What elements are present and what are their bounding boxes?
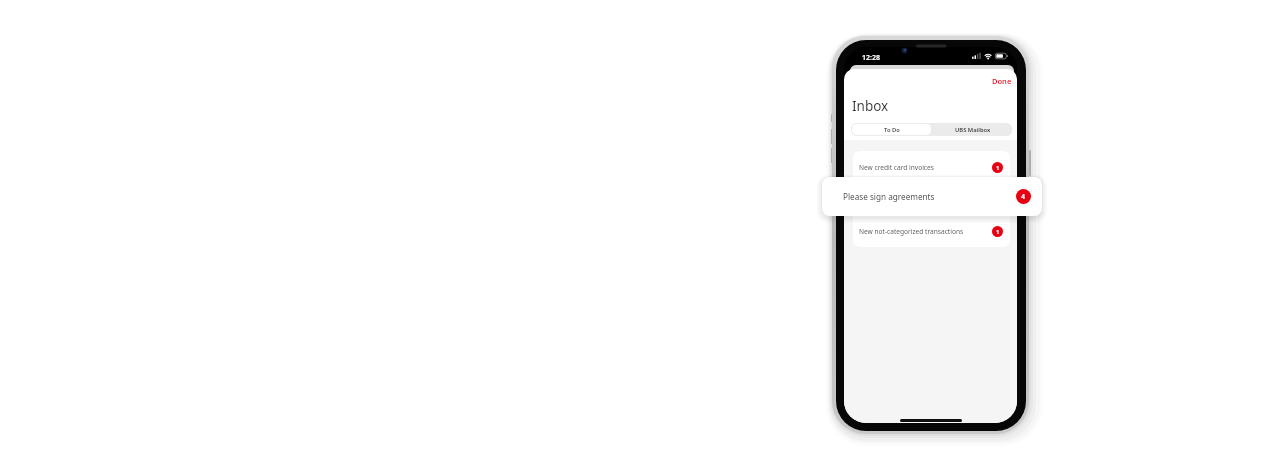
button[interactable]: New not-categorized transactions [853,215,1010,247]
staticText: To Do [884,126,900,134]
button[interactable]: To Do [852,124,931,135]
staticText: 4 [1021,192,1026,202]
button[interactable]: Please sign agreements [822,177,1042,216]
staticText: New credit card invoices [859,163,934,172]
staticText: Inbox [852,97,889,115]
button[interactable]: Done [992,76,1012,86]
staticText: Please sign agreements [843,191,935,202]
staticText: Done [992,76,1012,86]
staticText: 12:28 [862,53,880,63]
button[interactable]: UBS Mailbox [932,123,1012,136]
staticText: 1 [996,164,1000,172]
button[interactable]: New credit card invoices [853,151,1010,183]
staticText: 1 [996,228,1000,236]
staticText: UBS Mailbox [955,126,991,134]
staticText: New not-categorized transactions [859,227,964,236]
